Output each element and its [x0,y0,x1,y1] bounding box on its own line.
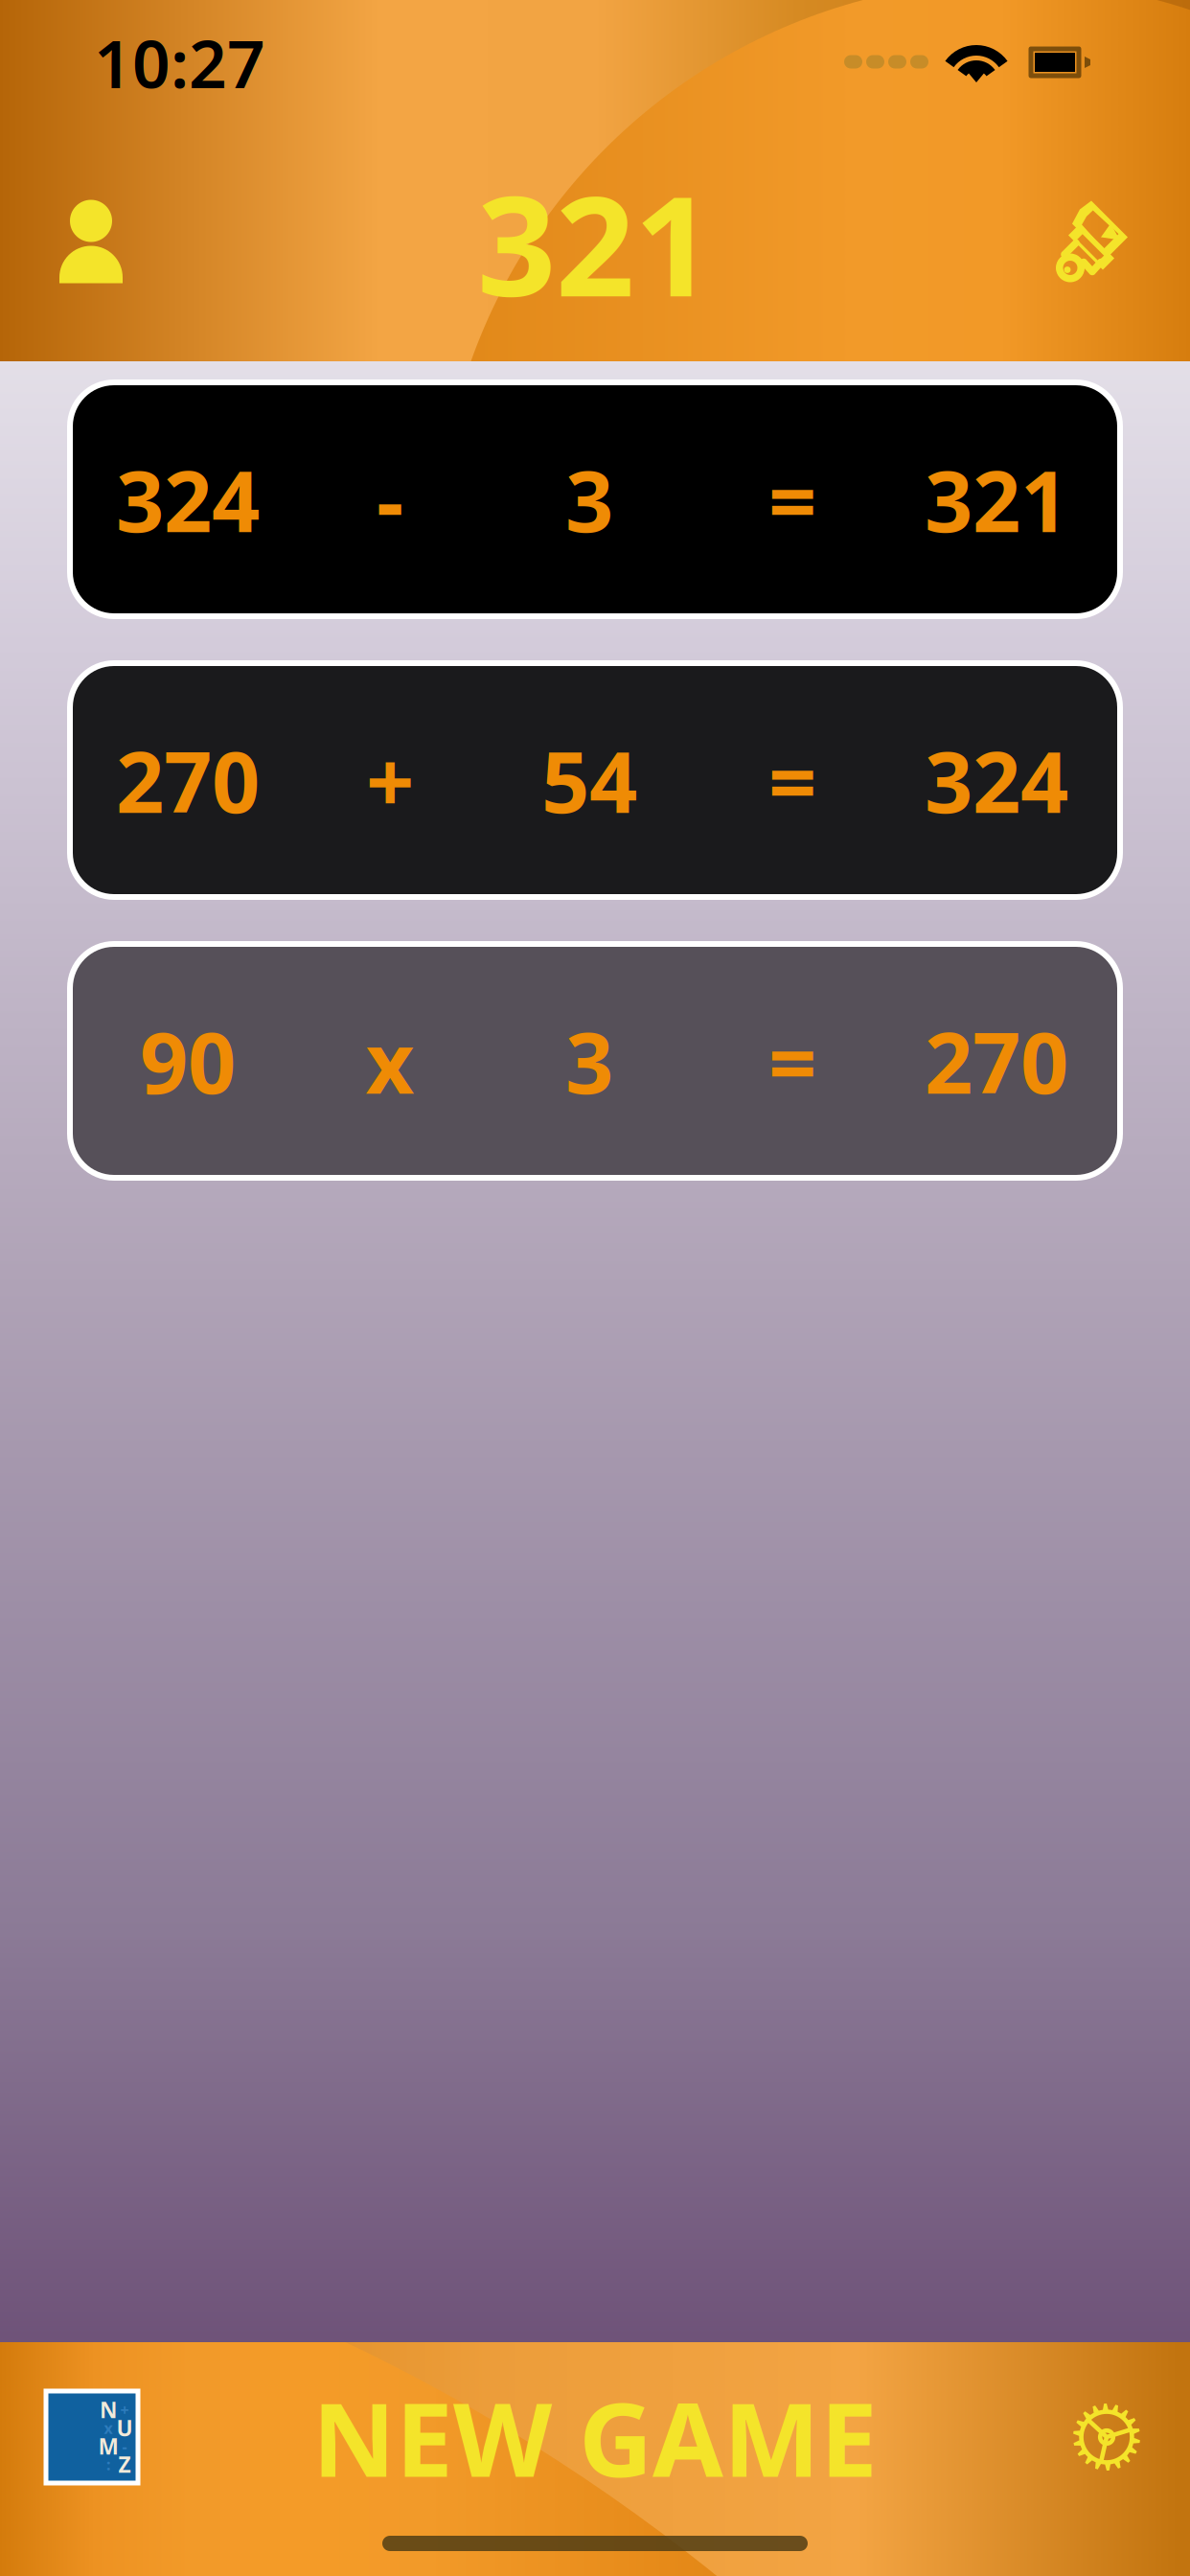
staticText: NEW GAME [312,2369,878,2505]
staticText: 270 [925,1005,1068,1117]
button[interactable]: Profile [0,152,182,334]
button[interactable]: 324 [70,382,1120,616]
staticText: 321 [925,443,1068,555]
staticText: 324 [925,724,1068,836]
staticText: 321 [477,151,713,335]
staticText: = [768,443,816,555]
staticText: + [366,724,414,836]
staticText: x [366,1005,414,1117]
staticText: + [120,2400,129,2420]
staticText: 90 [140,1005,236,1117]
staticText: : [106,2454,110,2475]
button[interactable]: Change theme [1008,152,1190,334]
staticText: 10:27 [94,18,265,106]
button[interactable]: 90 [70,944,1120,1178]
staticText: Z [118,2450,131,2479]
button[interactable]: 270 [70,663,1120,897]
button[interactable]: NEW GAME [260,2365,930,2509]
staticText: M [98,2432,118,2461]
staticText: 3 [565,1005,613,1117]
staticText: = [768,724,816,836]
staticText: - [377,443,403,555]
staticText: 54 [541,724,637,836]
button[interactable]: Settings [1023,2356,1190,2518]
button[interactable]: About NUMZ [0,2356,184,2518]
staticText: 3 [565,443,613,555]
staticText: 270 [116,724,260,836]
staticText: U [116,2413,133,2442]
staticText: 324 [116,443,260,555]
staticText: N [100,2395,117,2424]
staticText: - [122,2436,127,2456]
staticText: = [768,1005,816,1117]
staticText: x [104,2418,113,2438]
